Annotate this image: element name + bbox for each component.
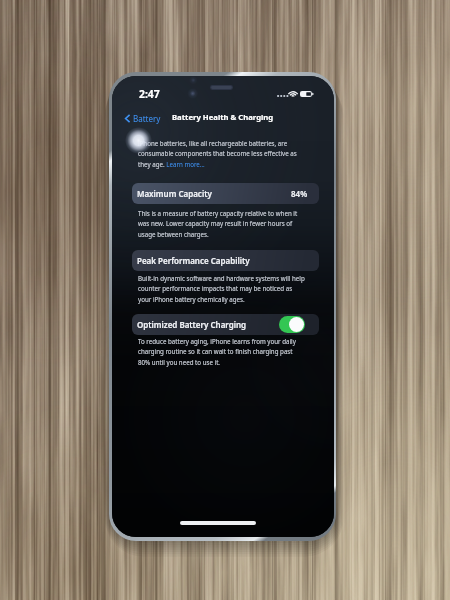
staticText: Built-in dynamic software and hardware s…: [138, 274, 305, 304]
button[interactable]: Peak Performance Capability: [132, 250, 319, 271]
staticText: 84%: [291, 188, 308, 199]
staticText: To reduce battery aging, iPhone learns f…: [138, 337, 305, 367]
staticText: Optimized Battery Charging: [137, 319, 247, 330]
button[interactable]: Maximum Capacity: [132, 183, 319, 204]
staticText: Peak Performance Capability: [137, 255, 250, 266]
staticText: This is a measure of battery capacity re…: [138, 209, 305, 239]
staticText: 2:47: [139, 87, 160, 101]
button[interactable]: Battery: [123, 110, 160, 127]
staticText: Maximum Capacity: [137, 188, 212, 199]
staticText: Battery Health & Charging: [172, 112, 274, 122]
staticText: Battery: [133, 113, 161, 124]
staticText: iPhone batteries, like all rechargeable …: [138, 139, 305, 169]
button[interactable]: Optimized Battery Charging: [132, 314, 319, 335]
button[interactable]: Optimized Battery Charging toggle: [279, 316, 305, 333]
